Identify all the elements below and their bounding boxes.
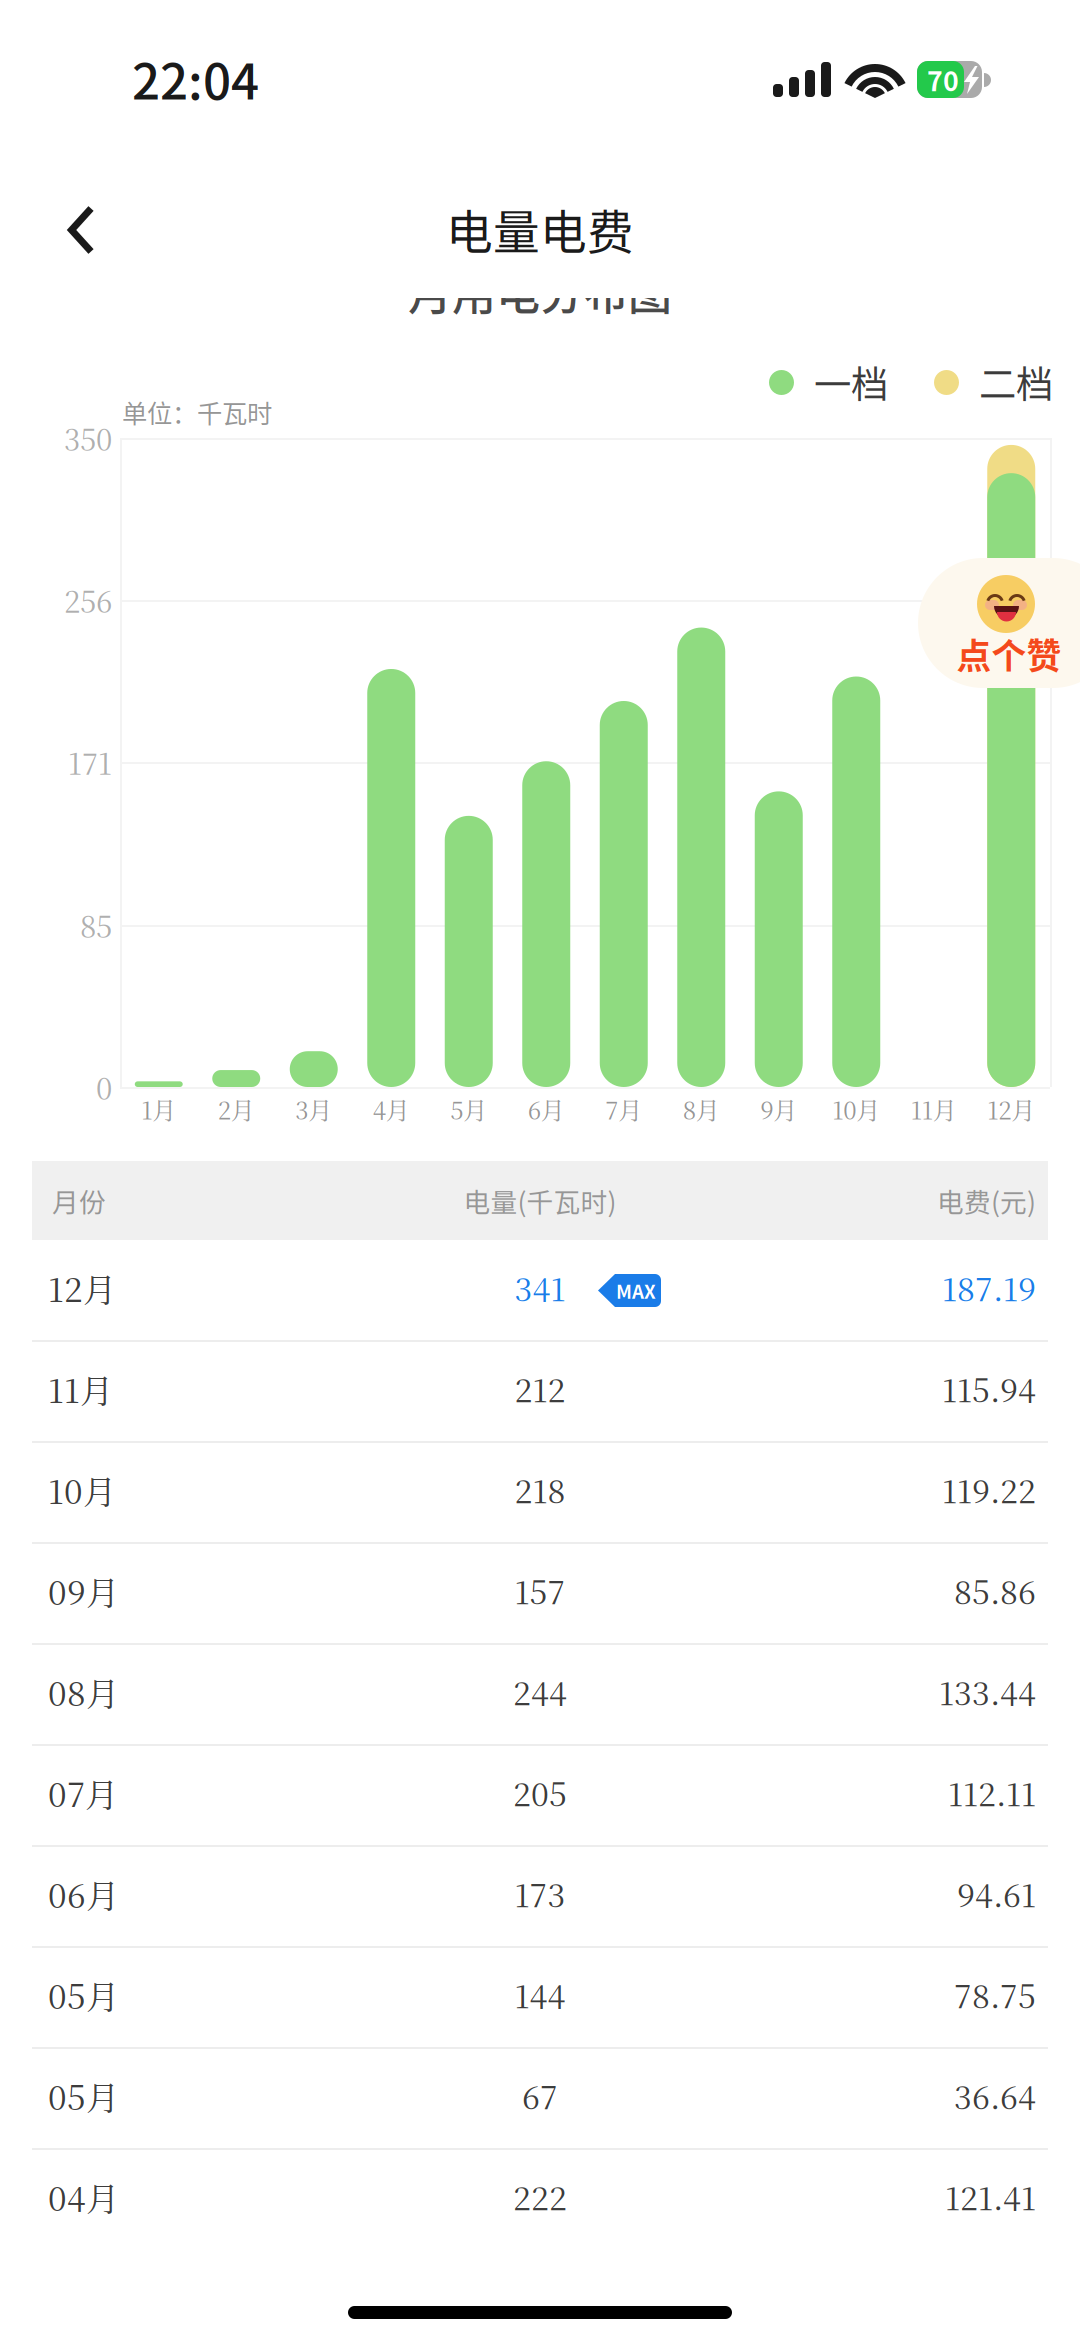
- staticText: 112.11: [948, 1769, 1036, 1815]
- staticText: 36.64: [954, 2072, 1036, 2118]
- staticText: 119.22: [942, 1466, 1036, 1512]
- staticText: 1月: [141, 1092, 176, 1126]
- staticText: 电量(千瓦时): [463, 1181, 616, 1220]
- staticText: 187.19: [942, 1264, 1036, 1310]
- button[interactable]: Back: [40, 177, 128, 273]
- button[interactable]: 04月: [0, 2149, 1080, 2250]
- staticText: 8月: [683, 1092, 720, 1126]
- staticText: 244: [513, 1668, 567, 1714]
- staticText: 70: [927, 60, 959, 99]
- staticText: 一档: [814, 355, 888, 409]
- staticText: 07月: [48, 1769, 118, 1816]
- staticText: 10月: [48, 1466, 116, 1513]
- button[interactable]: 07月: [0, 1745, 1080, 1846]
- button[interactable]: 10月: [0, 1442, 1080, 1543]
- staticText: 10月: [832, 1092, 880, 1126]
- button[interactable]: 12月: [0, 1240, 1080, 1341]
- staticText: 22:04: [132, 42, 259, 114]
- staticText: 256: [64, 579, 112, 621]
- staticText: 12月: [48, 1264, 116, 1311]
- staticText: 08月: [48, 1668, 119, 1715]
- staticText: 78.75: [954, 1971, 1036, 2017]
- button[interactable]: 09月: [0, 1543, 1080, 1644]
- staticText: 点个赞: [956, 629, 1061, 679]
- staticText: 144: [514, 1971, 565, 2017]
- staticText: 94.61: [957, 1870, 1036, 1916]
- staticText: 173: [514, 1870, 565, 1916]
- staticText: 电费(元): [937, 1181, 1036, 1220]
- button[interactable]: 08月: [0, 1644, 1080, 1745]
- staticText: 单位：千瓦时: [122, 394, 272, 430]
- staticText: 218: [514, 1466, 565, 1512]
- staticText: MAX: [616, 1277, 656, 1304]
- button[interactable]: 05月: [0, 2048, 1080, 2149]
- staticText: 7月: [605, 1092, 642, 1126]
- staticText: 0: [96, 1066, 112, 1108]
- staticText: 133.44: [939, 1668, 1036, 1714]
- staticText: 05月: [48, 2072, 119, 2119]
- staticText: 月用电分布图: [408, 259, 672, 323]
- button[interactable]: 05月: [0, 1947, 1080, 2048]
- staticText: 85: [80, 904, 112, 946]
- staticText: 4月: [373, 1092, 410, 1126]
- staticText: 05月: [48, 1971, 119, 2018]
- staticText: 04月: [48, 2173, 119, 2220]
- staticText: 09月: [48, 1567, 119, 1614]
- button[interactable]: 点个赞: [918, 558, 1080, 688]
- staticText: 205: [513, 1769, 567, 1815]
- staticText: 11月: [48, 1365, 113, 1412]
- staticText: 115.94: [942, 1365, 1036, 1411]
- staticText: 350: [64, 417, 112, 459]
- staticText: 12月: [987, 1092, 1035, 1126]
- staticText: 11月: [911, 1092, 957, 1126]
- staticText: 6月: [528, 1092, 565, 1126]
- staticText: 121.41: [945, 2173, 1036, 2219]
- staticText: 3月: [295, 1092, 332, 1126]
- staticText: 5月: [450, 1092, 487, 1126]
- staticText: 85.86: [954, 1567, 1036, 1613]
- staticText: 二档: [979, 355, 1053, 409]
- staticText: 月份: [52, 1181, 106, 1220]
- staticText: 06月: [48, 1870, 119, 1917]
- staticText: 341: [514, 1264, 565, 1310]
- button[interactable]: 11月: [0, 1341, 1080, 1442]
- staticText: 157: [514, 1567, 565, 1613]
- staticText: 67: [522, 2072, 558, 2118]
- staticText: 222: [513, 2173, 567, 2219]
- staticText: 171: [68, 741, 112, 783]
- staticText: 电量电费: [446, 195, 634, 263]
- staticText: 9月: [760, 1092, 797, 1126]
- staticText: 212: [514, 1365, 565, 1411]
- button[interactable]: 06月: [0, 1846, 1080, 1947]
- staticText: 2月: [218, 1092, 255, 1126]
